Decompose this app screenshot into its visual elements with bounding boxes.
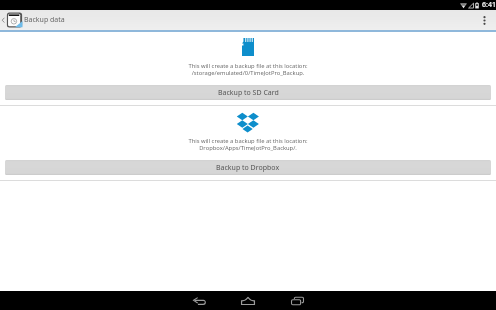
staticText: Backup data xyxy=(24,15,65,25)
button[interactable]: Home xyxy=(230,291,266,310)
staticText: This will create a backup file at this l… xyxy=(188,63,308,77)
button[interactable]: App icon xyxy=(5,10,24,30)
button[interactable]: Backup to Dropbox xyxy=(5,160,491,175)
staticText: Backup to SD Card xyxy=(218,88,279,98)
staticText: 6:41 xyxy=(482,0,496,10)
other: Navigate up xyxy=(1,16,5,24)
staticText: Backup to Dropbox xyxy=(216,163,280,173)
button[interactable]: Recent apps xyxy=(279,291,315,310)
button[interactable]: Backup to SD Card xyxy=(5,85,491,100)
button[interactable]: Back xyxy=(181,291,217,310)
button[interactable]: More options xyxy=(472,10,496,30)
staticText: This will create a backup file at this l… xyxy=(188,138,308,152)
